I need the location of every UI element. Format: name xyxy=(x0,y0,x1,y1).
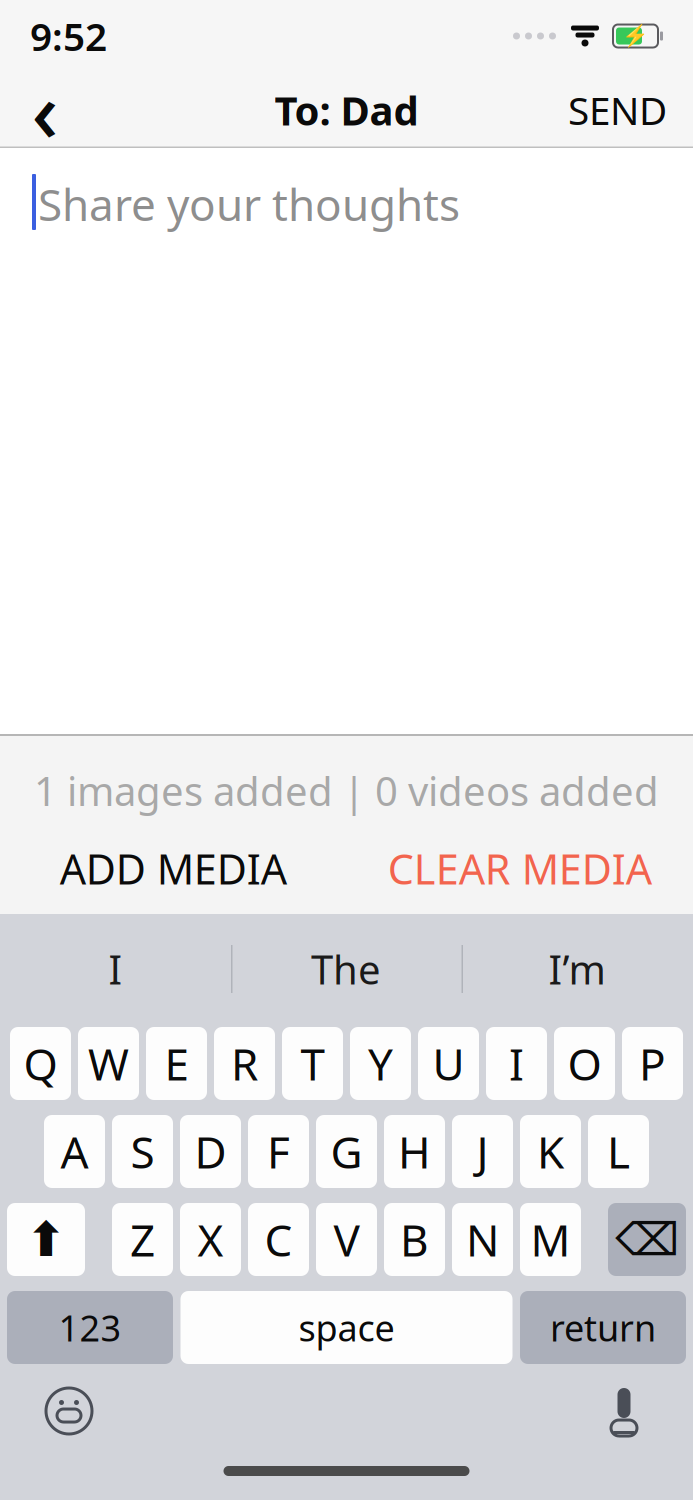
button[interactable]: R xyxy=(214,1027,275,1100)
button[interactable]: space xyxy=(180,1291,512,1364)
staticText: I xyxy=(509,1034,524,1093)
button[interactable]: Emoji xyxy=(36,1378,102,1444)
button[interactable]: SEND xyxy=(554,70,681,150)
button[interactable]: H xyxy=(384,1115,445,1188)
button[interactable]: D xyxy=(180,1115,241,1188)
staticText: C xyxy=(264,1210,292,1269)
staticText: T xyxy=(300,1034,324,1093)
button[interactable]: 123 xyxy=(7,1291,173,1364)
button[interactable]: X xyxy=(180,1203,241,1276)
button[interactable]: T xyxy=(282,1027,343,1100)
button[interactable]: Dictation xyxy=(591,1378,657,1444)
staticText: ‹ xyxy=(31,55,58,165)
staticText: F xyxy=(267,1122,290,1181)
button[interactable]: CLEAR MEDIA xyxy=(346,831,693,906)
staticText: ⬆ xyxy=(26,1212,66,1267)
button[interactable]: K xyxy=(520,1115,581,1188)
button[interactable]: Back xyxy=(12,70,78,150)
staticText: J xyxy=(476,1122,488,1181)
button[interactable]: C xyxy=(248,1203,309,1276)
staticText: U xyxy=(432,1034,464,1093)
staticText: H xyxy=(398,1122,431,1181)
staticText: D xyxy=(194,1122,226,1181)
button[interactable]: P xyxy=(622,1027,683,1100)
staticText: N xyxy=(466,1210,499,1269)
staticText: To: Dad xyxy=(274,83,418,136)
button[interactable]: E xyxy=(146,1027,207,1100)
button[interactable]: return xyxy=(520,1291,686,1364)
staticText: V xyxy=(333,1210,359,1269)
staticText: I xyxy=(108,942,122,995)
staticText: return xyxy=(550,1304,656,1351)
staticText: W xyxy=(88,1034,129,1093)
button[interactable]: Shift xyxy=(7,1203,85,1276)
button[interactable]: L xyxy=(588,1115,649,1188)
button[interactable]: Z xyxy=(112,1203,173,1276)
staticText: O xyxy=(567,1034,601,1093)
staticText: Q xyxy=(23,1034,57,1093)
button[interactable]: B xyxy=(384,1203,445,1276)
button[interactable]: A xyxy=(44,1115,105,1188)
button[interactable]: Y xyxy=(350,1027,411,1100)
staticText: K xyxy=(537,1122,564,1181)
button[interactable]: J xyxy=(452,1115,513,1188)
staticText: R xyxy=(231,1034,258,1093)
button[interactable]: Q xyxy=(10,1027,71,1100)
button[interactable]: S xyxy=(112,1115,173,1188)
staticText: S xyxy=(130,1122,154,1181)
staticText: Share your thoughts xyxy=(38,174,460,234)
button[interactable]: F xyxy=(248,1115,309,1188)
button[interactable]: N xyxy=(452,1203,513,1276)
staticText: 1 images added | 0 videos added xyxy=(34,764,659,817)
staticText: 123 xyxy=(58,1304,121,1351)
staticText: The xyxy=(311,942,381,995)
staticText: X xyxy=(197,1210,223,1269)
staticText: L xyxy=(607,1122,630,1181)
staticText: 9:52 xyxy=(30,10,107,62)
button[interactable]: I xyxy=(0,920,231,1018)
staticText: P xyxy=(639,1034,666,1093)
staticText: space xyxy=(298,1304,394,1351)
staticText: E xyxy=(164,1034,188,1093)
button[interactable]: W xyxy=(78,1027,139,1100)
staticText: B xyxy=(400,1210,429,1269)
staticText: CLEAR MEDIA xyxy=(388,841,652,896)
button[interactable]: Delete xyxy=(608,1203,686,1276)
button[interactable]: O xyxy=(554,1027,615,1100)
staticText: G xyxy=(330,1122,362,1181)
staticText: Z xyxy=(130,1210,155,1269)
button[interactable]: I xyxy=(486,1027,547,1100)
staticText: I’m xyxy=(548,942,605,995)
button[interactable]: M xyxy=(520,1203,581,1276)
button[interactable]: V xyxy=(316,1203,377,1276)
button[interactable]: The xyxy=(231,920,461,1018)
button[interactable]: G xyxy=(316,1115,377,1188)
staticText: SEND xyxy=(568,84,667,136)
staticText: ADD MEDIA xyxy=(60,841,287,896)
button[interactable]: ADD MEDIA xyxy=(0,831,346,906)
staticText: ⚡ xyxy=(622,24,649,48)
staticText: ⌫ xyxy=(615,1214,679,1265)
button[interactable]: I’m xyxy=(461,920,693,1018)
staticText: A xyxy=(60,1122,88,1181)
staticText: M xyxy=(530,1210,570,1269)
button[interactable]: U xyxy=(418,1027,479,1100)
staticText: Y xyxy=(368,1034,393,1093)
